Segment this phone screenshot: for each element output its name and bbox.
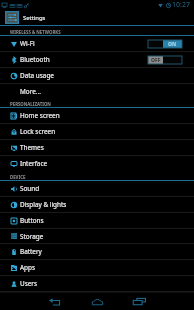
button[interactable]: Bluetooth xyxy=(0,52,194,68)
button[interactable]: Storage xyxy=(0,229,194,244)
staticText: Buttons xyxy=(20,216,44,225)
staticText: DEVICE xyxy=(10,174,26,180)
button[interactable]: Sound xyxy=(0,181,194,197)
button[interactable]: Recent apps xyxy=(118,293,161,310)
button[interactable]: Battery xyxy=(0,244,194,260)
button[interactable]: More... xyxy=(0,84,194,100)
staticText: OFF xyxy=(151,57,161,64)
button[interactable]: Data usage xyxy=(0,68,194,84)
button[interactable]: ON xyxy=(148,40,182,48)
button[interactable]: Wi-Fi xyxy=(0,36,194,52)
button[interactable]: Themes xyxy=(0,140,194,156)
staticText: Settings xyxy=(23,14,46,22)
button[interactable]: Apps xyxy=(0,260,194,276)
button[interactable]: Back xyxy=(33,293,76,310)
staticText: PERSONALIZATION xyxy=(10,101,51,107)
button[interactable]: Home xyxy=(76,293,118,310)
staticText: Interface xyxy=(20,159,48,168)
staticText: Themes xyxy=(20,143,44,152)
button[interactable]: Display & lights xyxy=(0,197,194,213)
staticText: Wi-Fi xyxy=(20,39,35,48)
button[interactable]: Home screen xyxy=(0,108,194,124)
staticText: 10:27 xyxy=(172,0,190,10)
staticText: Bluetooth xyxy=(20,55,50,64)
staticText: Users xyxy=(20,279,38,288)
staticText: Battery xyxy=(20,247,42,256)
button[interactable]: Interface xyxy=(0,156,194,172)
staticText: Display & lights xyxy=(20,200,67,209)
staticText: Home screen xyxy=(20,111,60,120)
button[interactable]: Users xyxy=(0,276,194,292)
staticText: Apps xyxy=(20,263,36,272)
button[interactable]: Settings xyxy=(0,10,194,25)
staticText: Storage xyxy=(20,232,44,241)
staticText: More... xyxy=(20,87,41,96)
staticText: Lock screen xyxy=(20,127,56,136)
staticText: Data usage xyxy=(20,71,54,80)
staticText: Sound xyxy=(20,184,40,193)
staticText: ON xyxy=(168,41,177,48)
button[interactable]: Buttons xyxy=(0,213,194,229)
staticText: WIRELESS & NETWORKS xyxy=(10,29,61,35)
button[interactable]: Lock screen xyxy=(0,124,194,140)
button[interactable]: OFF xyxy=(148,56,182,64)
